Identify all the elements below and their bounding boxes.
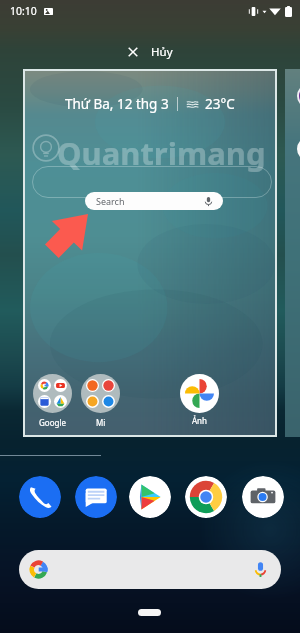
button[interactable]: Thứ Ba, 12 thg 3 xyxy=(25,71,275,435)
staticText: Quantrimang xyxy=(57,132,266,174)
staticText: 10:10 xyxy=(10,4,37,18)
staticText: Google xyxy=(39,417,66,428)
staticText: Thứ Ba, 12 thg 3 xyxy=(65,95,169,113)
button[interactable]: Camera xyxy=(242,476,284,518)
staticText: Ảnh xyxy=(192,415,207,426)
button[interactable]: Messages xyxy=(75,476,117,518)
button[interactable]: Chrome xyxy=(185,476,227,518)
button[interactable]: Phone xyxy=(19,476,61,518)
staticText: Mi xyxy=(96,417,106,428)
button[interactable]: Google xyxy=(33,374,72,413)
button[interactable]: Mi xyxy=(81,374,120,413)
button[interactable]: Search xyxy=(85,192,223,210)
button[interactable]: Home xyxy=(138,609,161,616)
staticText: Hủy xyxy=(151,44,173,60)
button[interactable]: Close xyxy=(119,40,181,64)
button[interactable]: Search xyxy=(19,550,281,589)
other: Close xyxy=(127,46,139,58)
staticText: 23°C xyxy=(205,95,235,113)
staticText: Search xyxy=(96,195,125,207)
button[interactable]: Play Store xyxy=(129,476,171,518)
button[interactable]: Photos xyxy=(180,374,219,413)
